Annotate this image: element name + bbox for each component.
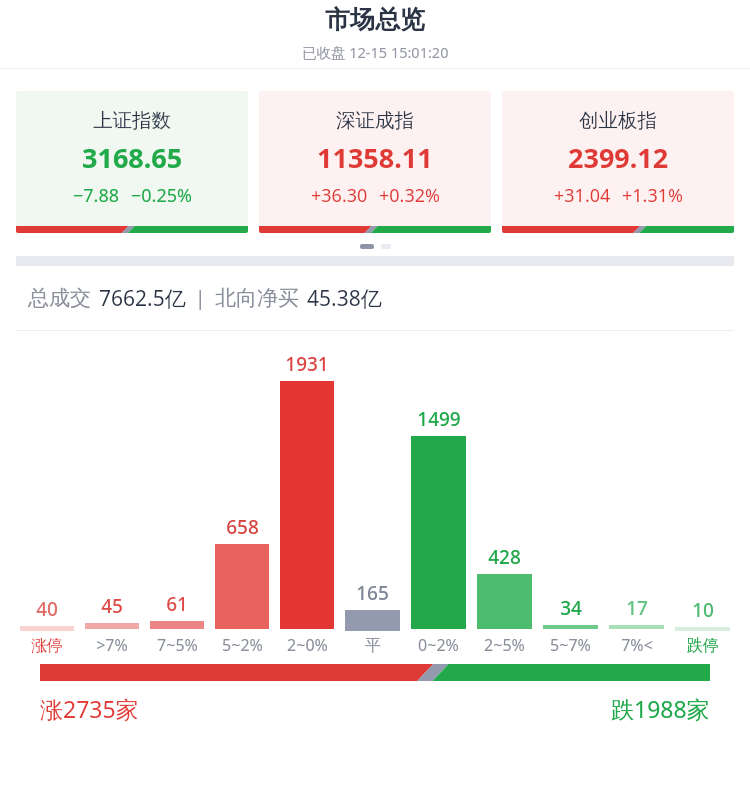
staticText: 10 [692, 597, 714, 623]
staticText: 45 [101, 593, 123, 619]
staticText: >7% [96, 634, 128, 656]
staticText: 7662.5亿 [99, 284, 186, 313]
staticText: 1931 [285, 351, 329, 377]
staticText: 165 [356, 580, 389, 606]
button[interactable]: 深证成指 [259, 91, 491, 233]
button[interactable]: 658 [215, 514, 269, 656]
staticText: 涨2735家 [40, 693, 139, 724]
staticText: +31.04 [554, 183, 611, 208]
staticText: 45.38亿 [307, 284, 382, 313]
staticText: 61 [166, 591, 188, 617]
staticText: 3168.65 [82, 139, 183, 176]
button[interactable]: 34 [543, 595, 598, 656]
staticText: 2~0% [287, 634, 328, 656]
staticText: +0.32% [379, 183, 440, 208]
staticText: 上证指数 [93, 108, 171, 133]
button[interactable]: 1499 [411, 406, 466, 656]
staticText: 跌停 [687, 636, 719, 656]
staticText: 5~2% [222, 634, 263, 656]
staticText: 深证成指 [336, 108, 414, 133]
staticText: −7.88 [73, 183, 120, 208]
button[interactable]: 上证指数 [16, 91, 248, 233]
button[interactable]: 10 [675, 597, 730, 656]
button[interactable]: 165 [345, 580, 400, 656]
button[interactable]: 17 [609, 595, 664, 656]
staticText: 已收盘 12-15 15:01:20 [302, 42, 449, 62]
staticText: 创业板指 [579, 108, 657, 133]
button[interactable]: 创业板指 [502, 91, 734, 233]
staticText: 428 [488, 544, 521, 570]
staticText: 7%< [621, 634, 653, 656]
staticText: 平 [365, 636, 381, 656]
staticText: 总成交 [28, 285, 91, 311]
button[interactable]: 61 [150, 591, 204, 656]
button[interactable]: 40 [20, 596, 74, 656]
staticText: 北向净买 [215, 285, 299, 311]
staticText: 跌1988家 [611, 693, 710, 724]
staticText: 5~7% [550, 634, 591, 656]
staticText: 11358.11 [317, 139, 433, 176]
staticText: +36.30 [311, 183, 368, 208]
button[interactable]: 1931 [280, 351, 334, 656]
staticText: 7~5% [157, 634, 198, 656]
button[interactable]: 45 [85, 593, 139, 656]
staticText: 市场总览 [325, 4, 425, 35]
staticText: 0~2% [418, 634, 459, 656]
staticText: −0.25% [131, 183, 192, 208]
staticText: 40 [36, 596, 58, 622]
staticText: 658 [226, 514, 259, 540]
staticText: 2399.12 [568, 139, 669, 176]
staticText: 2~5% [484, 634, 525, 656]
button[interactable]: 428 [477, 544, 532, 656]
staticText: 17 [626, 595, 648, 621]
staticText: | [195, 285, 206, 311]
staticText: 34 [560, 595, 582, 621]
staticText: 1499 [417, 406, 461, 432]
staticText: 涨停 [31, 636, 63, 656]
staticText: +1.31% [622, 183, 683, 208]
